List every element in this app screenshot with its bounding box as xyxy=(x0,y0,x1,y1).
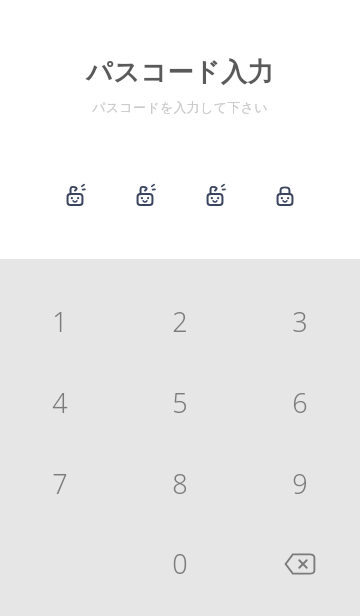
button[interactable]: 4 xyxy=(0,362,120,443)
button[interactable]: 6 xyxy=(240,362,360,443)
button[interactable]: 1 xyxy=(0,281,120,362)
staticText: パスコードを入力して下さい xyxy=(92,99,268,115)
button[interactable]: Backspace xyxy=(240,524,360,603)
staticText: 4 xyxy=(52,384,68,421)
staticText: 5 xyxy=(172,384,188,421)
staticText: 3 xyxy=(292,303,308,340)
button[interactable]: 9 xyxy=(240,443,360,524)
staticText: 2 xyxy=(172,303,188,340)
button[interactable]: 5 xyxy=(120,362,240,443)
button[interactable]: 0 xyxy=(120,524,240,603)
staticText: 7 xyxy=(52,465,68,502)
button[interactable]: 7 xyxy=(0,443,120,524)
staticText: 9 xyxy=(292,465,308,502)
button[interactable]: 3 xyxy=(240,281,360,362)
staticText: 6 xyxy=(292,384,308,421)
staticText: 8 xyxy=(172,465,188,502)
button[interactable]: 2 xyxy=(120,281,240,362)
button[interactable]: 8 xyxy=(120,443,240,524)
staticText: パスコード入力 xyxy=(86,56,274,89)
staticText: 1 xyxy=(52,303,68,340)
staticText: 0 xyxy=(172,545,188,582)
